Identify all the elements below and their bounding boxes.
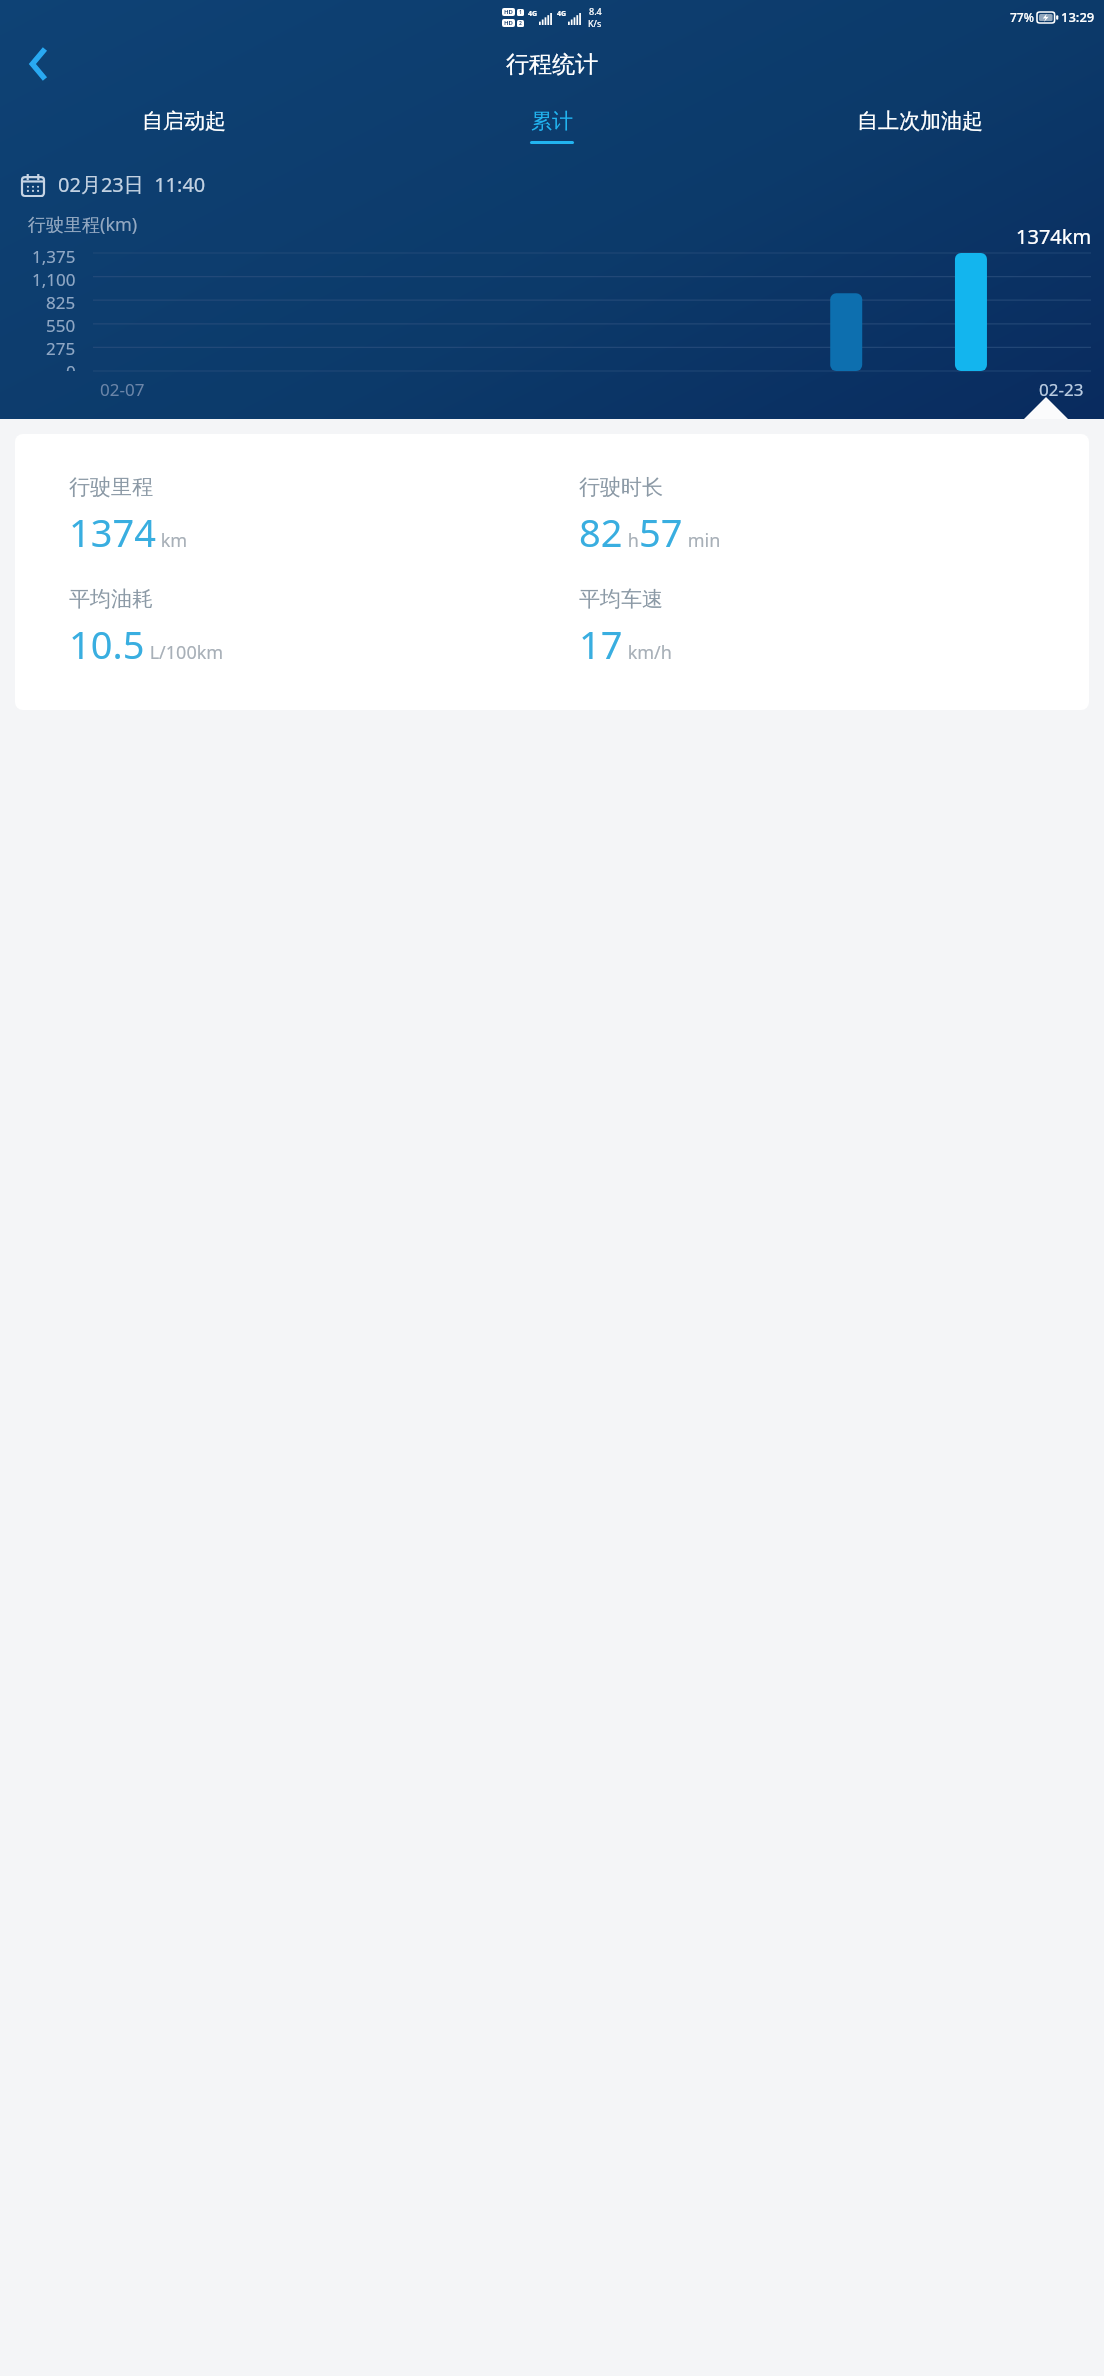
staticText: 行程统计 <box>506 50 598 79</box>
staticText: 行驶里程(km) <box>28 212 138 237</box>
staticText: 275 <box>46 337 76 360</box>
staticText: HD <box>504 8 513 16</box>
staticText: 550 <box>46 314 76 337</box>
button[interactable]: Back <box>10 35 68 93</box>
staticText: 自上次加油起 <box>857 108 983 134</box>
staticText: h <box>623 528 639 553</box>
staticText: 02月23日 11:40 <box>58 171 206 198</box>
button[interactable]: 行驶里程 <box>15 434 1089 710</box>
staticText: km/h <box>623 640 672 665</box>
staticText: 8.4 <box>589 5 602 17</box>
staticText: 行驶时长 <box>579 474 663 500</box>
staticText: 自启动起 <box>142 108 226 134</box>
button[interactable]: 自启动起 <box>0 95 368 157</box>
button[interactable]: 累计 <box>368 95 736 157</box>
staticText: 0 <box>66 360 76 371</box>
staticText: 17 <box>579 618 623 670</box>
staticText: L/100km <box>145 640 224 665</box>
staticText: 13:29 <box>1061 8 1095 26</box>
staticText: 1 <box>519 9 522 16</box>
staticText: 77% <box>1010 9 1034 25</box>
staticText: 1,100 <box>32 268 76 291</box>
staticText: HD <box>504 19 513 27</box>
staticText: 2 <box>519 20 522 27</box>
staticText: 02-07 <box>100 378 145 401</box>
staticText: 1374km <box>1016 223 1092 250</box>
staticText: 57 <box>639 506 683 558</box>
staticText: km <box>156 528 188 553</box>
staticText: 平均油耗 <box>69 586 153 612</box>
staticText: 10.5 <box>69 618 145 670</box>
staticText: 825 <box>46 291 76 314</box>
staticText: min <box>683 528 721 553</box>
staticText: 02-23 <box>1039 378 1084 401</box>
staticText: K/s <box>588 17 602 29</box>
staticText: 4G <box>528 9 538 19</box>
staticText: 行驶里程 <box>69 474 153 500</box>
staticText: 4G <box>557 9 567 19</box>
staticText: 82 <box>579 506 623 558</box>
staticText: 1374 <box>69 506 156 558</box>
staticText: 累计 <box>531 108 573 134</box>
staticText: 1,375 <box>32 245 76 268</box>
staticText: 平均车速 <box>579 586 663 612</box>
button[interactable]: 自上次加油起 <box>736 95 1104 157</box>
